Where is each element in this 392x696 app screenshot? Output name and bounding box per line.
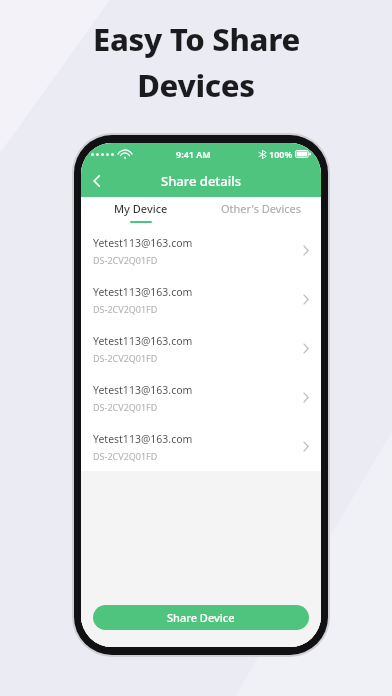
button[interactable]: Yetest113@163.com [81, 373, 321, 422]
button[interactable]: Yetest113@163.com [81, 275, 321, 324]
staticText: 9:41 AM [176, 148, 211, 160]
staticText: Devices [137, 64, 255, 106]
button[interactable]: Yetest113@163.com [81, 226, 321, 275]
staticText: DS-2CV2Q01FD [93, 254, 158, 266]
button[interactable]: Yetest113@163.com [81, 324, 321, 373]
staticText: DS-2CV2Q01FD [93, 303, 158, 315]
staticText: Share details [161, 172, 242, 190]
staticText: DS-2CV2Q01FD [93, 401, 158, 413]
staticText: Yetest113@163.com [93, 432, 193, 446]
staticText: My Device [114, 201, 168, 216]
staticText: Yetest113@163.com [93, 236, 193, 250]
staticText: Yetest113@163.com [93, 334, 193, 348]
staticText: Yetest113@163.com [93, 285, 193, 299]
staticText: DS-2CV2Q01FD [93, 352, 158, 364]
staticText: Other's Devices [221, 201, 302, 216]
staticText: 100% [269, 148, 293, 160]
staticText: Yetest113@163.com [93, 383, 193, 397]
button[interactable]: Share Device [93, 605, 309, 630]
button[interactable]: Back [81, 165, 113, 197]
button[interactable]: Yetest113@163.com [81, 422, 321, 471]
staticText: DS-2CV2Q01FD [93, 450, 158, 462]
staticText: Share Device [167, 610, 235, 625]
staticText: Easy To Share [93, 18, 300, 60]
button[interactable]: Other's Devices [201, 197, 321, 226]
button[interactable]: My Device [81, 197, 201, 226]
